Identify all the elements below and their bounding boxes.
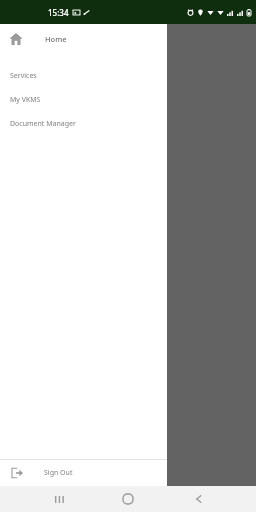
staticText: 15:34 xyxy=(48,7,69,18)
button[interactable]: Services xyxy=(0,64,167,88)
button[interactable]: Document Manager xyxy=(0,112,167,136)
button[interactable]: Home xyxy=(0,24,167,54)
button[interactable]: Home xyxy=(115,486,141,512)
staticText: Home xyxy=(45,34,67,44)
button[interactable]: Sign Out xyxy=(0,460,167,486)
staticText: Services xyxy=(10,71,37,81)
staticText: Sign Out xyxy=(44,468,73,478)
button[interactable]: Back xyxy=(186,486,212,512)
staticText: My VKMS xyxy=(10,95,41,105)
staticText: Document Manager xyxy=(10,119,76,129)
button[interactable]: My VKMS xyxy=(0,88,167,112)
button[interactable]: Recent apps xyxy=(45,486,71,512)
